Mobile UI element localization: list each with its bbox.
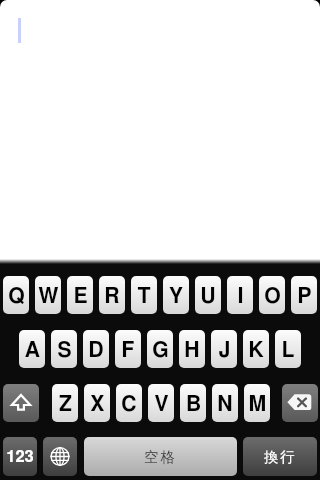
button[interactable]: O: [259, 276, 285, 314]
button[interactable]: E: [67, 276, 93, 314]
staticText: 換行: [264, 448, 296, 466]
button[interactable]: Y: [163, 276, 189, 314]
button[interactable]: A: [19, 330, 45, 368]
button[interactable]: 換行: [243, 437, 317, 476]
staticText: V: [154, 394, 169, 415]
staticText: H: [184, 340, 200, 361]
staticText: 空格: [144, 448, 177, 466]
button[interactable]: N: [212, 384, 238, 422]
staticText: B: [186, 394, 201, 415]
button[interactable]: Switch language: [43, 437, 77, 476]
button[interactable]: B: [180, 384, 206, 422]
button[interactable]: J: [211, 330, 237, 368]
staticText: G: [152, 340, 169, 361]
staticText: N: [217, 394, 233, 415]
button[interactable]: I: [227, 276, 253, 314]
staticText: M: [248, 394, 267, 415]
button[interactable]: T: [131, 276, 157, 314]
button[interactable]: H: [179, 330, 205, 368]
staticText: A: [25, 340, 40, 361]
staticText: J: [218, 340, 231, 361]
staticText: E: [73, 286, 88, 307]
button[interactable]: R: [99, 276, 125, 314]
staticText: F: [121, 340, 135, 361]
staticText: U: [200, 286, 216, 307]
staticText: Z: [59, 394, 72, 415]
staticText: X: [90, 394, 105, 415]
button[interactable]: Backspace: [282, 384, 318, 422]
button[interactable]: S: [51, 330, 77, 368]
staticText: I: [237, 286, 244, 307]
button[interactable]: 空格: [84, 437, 237, 476]
button[interactable]: M: [244, 384, 270, 422]
button[interactable]: F: [115, 330, 141, 368]
staticText: R: [104, 286, 120, 307]
button[interactable]: 123: [3, 437, 37, 476]
staticText: W: [38, 286, 59, 307]
staticText: Y: [169, 286, 183, 307]
button[interactable]: K: [243, 330, 269, 368]
staticText: S: [57, 340, 72, 361]
button[interactable]: D: [83, 330, 109, 368]
staticText: O: [264, 286, 281, 307]
button[interactable]: Q: [3, 276, 29, 314]
button[interactable]: P: [291, 276, 317, 314]
button[interactable]: Z: [52, 384, 78, 422]
staticText: D: [88, 340, 104, 361]
staticText: 123: [6, 449, 34, 465]
button[interactable]: W: [35, 276, 61, 314]
staticText: K: [248, 340, 264, 361]
staticText: C: [121, 394, 137, 415]
button[interactable]: G: [147, 330, 173, 368]
button[interactable]: V: [148, 384, 174, 422]
staticText: P: [297, 286, 312, 307]
button[interactable]: C: [116, 384, 142, 422]
button[interactable]: L: [275, 330, 301, 368]
staticText: Q: [8, 286, 25, 307]
staticText: T: [137, 286, 151, 307]
button[interactable]: Shift: [3, 384, 39, 422]
button[interactable]: U: [195, 276, 221, 314]
button[interactable]: X: [84, 384, 110, 422]
staticText: L: [281, 340, 295, 361]
